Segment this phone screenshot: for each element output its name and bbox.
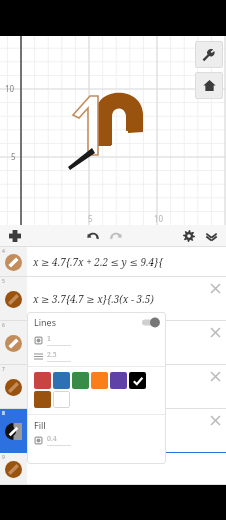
staticText: 10 — [5, 83, 15, 94]
button[interactable]: 8 — [0, 409, 226, 453]
staticText: 6 — [2, 322, 5, 329]
staticText: 5 — [11, 151, 16, 162]
staticText: x ≥ 3.7{4.7 ≥ x}{.3(x − 3.5) — [33, 292, 154, 306]
button[interactable]: Toggle lines — [142, 318, 159, 327]
button[interactable]: Delete expression — [207, 412, 223, 428]
button[interactable]: Color 1 — [53, 372, 70, 389]
button[interactable]: Color 2 — [72, 372, 89, 389]
button[interactable]: Delete expression — [207, 324, 223, 340]
staticText: 5 — [2, 278, 5, 285]
staticText: x ≥ 4.7{.7x + 2.2 ≤ y ≤ 9.4}{ — [33, 255, 163, 269]
button[interactable]: Home — [195, 72, 223, 99]
button[interactable]: Color 3 — [91, 372, 108, 389]
button[interactable]: Color brown — [34, 391, 51, 408]
staticText: − 3.7) — [33, 336, 56, 350]
staticText: Lines — [34, 316, 56, 328]
button[interactable]: Tools — [195, 41, 223, 68]
staticText: 8 — [2, 410, 5, 417]
button[interactable]: Delete expression — [207, 368, 223, 384]
staticText: 6)⁴ ≤ — [33, 380, 58, 394]
button[interactable]: 7 — [0, 365, 226, 409]
button[interactable]: Add expression — [4, 225, 26, 247]
button[interactable]: 4 — [0, 247, 226, 277]
staticText: 1 — [47, 334, 51, 344]
staticText: 7 — [2, 366, 5, 373]
button[interactable]: Delete expression — [207, 280, 223, 296]
staticText: Fill — [34, 419, 46, 431]
button[interactable]: Undo — [82, 225, 104, 247]
staticText: 9 — [2, 454, 5, 461]
staticText: {4.7 ≥ — [33, 424, 62, 438]
button[interactable]: Redo — [104, 225, 126, 247]
staticText: 10 — [154, 213, 164, 224]
staticText: 4 — [2, 248, 5, 255]
button[interactable]: Color 4 — [110, 372, 127, 389]
staticText: 5 — [88, 213, 93, 224]
staticText: 0.4 — [47, 434, 57, 444]
button[interactable]: Collapse — [200, 225, 222, 247]
button[interactable]: 9 — [0, 453, 226, 485]
button[interactable]: 6 — [0, 321, 226, 365]
button[interactable]: Color 0 — [34, 372, 51, 389]
staticText: 2.5 — [47, 350, 57, 360]
button[interactable]: 5 — [0, 277, 226, 321]
button[interactable]: Settings — [178, 225, 200, 247]
button[interactable]: Color white — [53, 391, 70, 408]
button[interactable]: Color 5 — [129, 372, 146, 389]
